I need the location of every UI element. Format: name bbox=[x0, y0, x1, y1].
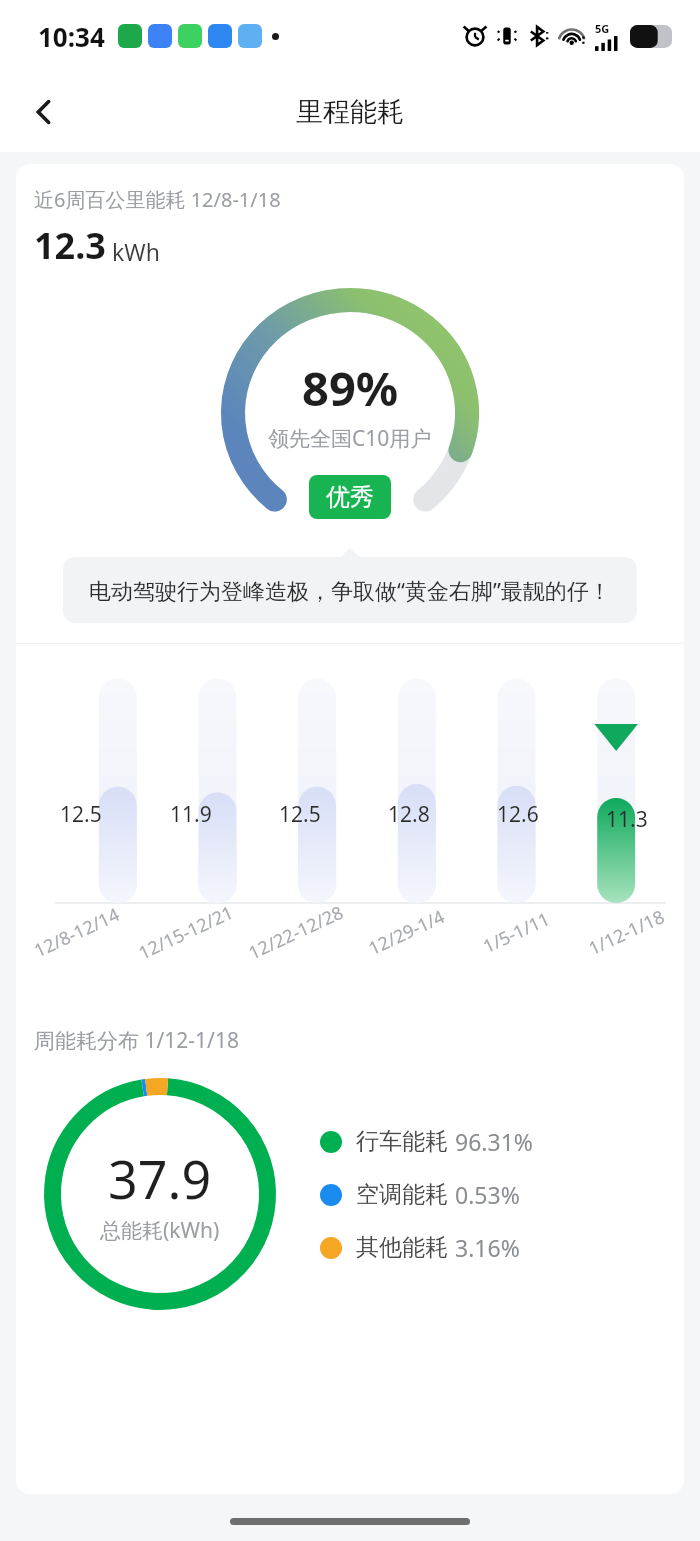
staticText: kWh bbox=[112, 236, 160, 267]
staticText: 10:34 bbox=[38, 19, 105, 54]
staticText: 其他能耗 bbox=[356, 1233, 448, 1262]
staticText: 12/22-12/28 bbox=[244, 900, 347, 965]
staticText: 12.5 bbox=[60, 800, 102, 829]
staticText: 12/29-1/4 bbox=[364, 904, 448, 961]
staticText: 里程能耗 bbox=[296, 95, 404, 129]
staticText: 12.5 bbox=[279, 800, 321, 829]
button[interactable]: 空调能耗 bbox=[320, 1179, 520, 1210]
button[interactable]: Back bbox=[18, 86, 70, 138]
button[interactable]: 行车能耗 bbox=[320, 1126, 533, 1157]
staticText: 37.9 bbox=[108, 1143, 212, 1214]
staticText: 12.3 bbox=[34, 221, 106, 270]
staticText: 1/12-1/18 bbox=[584, 904, 668, 961]
staticText: 行车能耗 bbox=[356, 1127, 448, 1156]
staticText: 11.3 bbox=[606, 805, 648, 834]
staticText: 89% bbox=[302, 356, 399, 420]
staticText: 总能耗(kWh) bbox=[100, 1216, 220, 1245]
button[interactable]: 其他能耗 bbox=[320, 1232, 520, 1263]
staticText: 5G bbox=[595, 21, 610, 36]
staticText: 3.16% bbox=[455, 1232, 520, 1263]
staticText: 领先全国C10用户 bbox=[268, 424, 432, 453]
staticText: 0.53% bbox=[455, 1179, 520, 1210]
staticText: 优秀 bbox=[326, 482, 374, 512]
staticText: 空调能耗 bbox=[356, 1180, 448, 1209]
staticText: 96.31% bbox=[455, 1126, 533, 1157]
staticText: 周能耗分布 1/12-1/18 bbox=[34, 1026, 239, 1055]
staticText: 12.8 bbox=[388, 800, 430, 829]
staticText: 12/15-12/21 bbox=[134, 900, 237, 965]
staticText: 12.6 bbox=[497, 800, 539, 829]
button[interactable]: 优秀 bbox=[309, 475, 391, 519]
staticText: 1/5-1/11 bbox=[479, 906, 554, 959]
staticText: 电动驾驶行为登峰造极，争取做“黄金右脚”最靓的仔！ bbox=[89, 575, 611, 605]
staticText: 12/8-12/14 bbox=[30, 902, 124, 963]
staticText: 11.9 bbox=[170, 800, 212, 829]
staticText: 近6周百公里能耗 12/8-1/18 bbox=[34, 186, 281, 213]
